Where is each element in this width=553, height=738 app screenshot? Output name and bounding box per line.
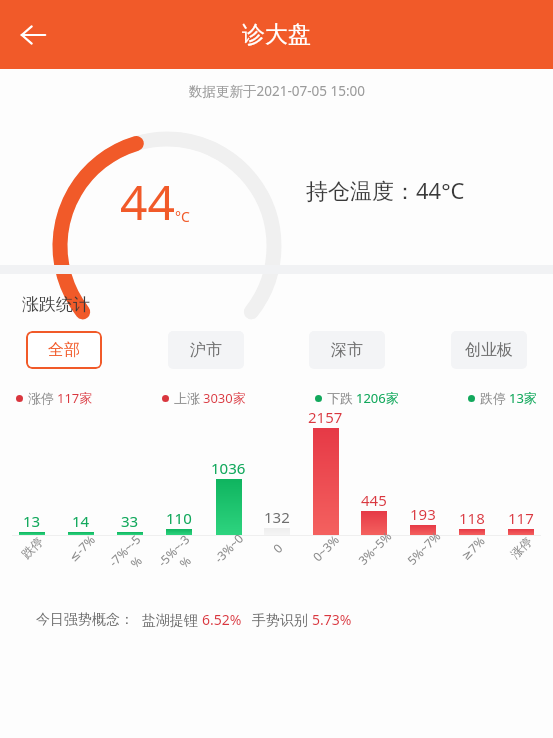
staticText: 193: [410, 504, 436, 524]
staticText: 118: [459, 508, 485, 528]
staticText: 涨停: [28, 390, 54, 406]
staticText: 持仓温度：44°C: [306, 175, 465, 205]
staticText: 全部: [48, 340, 80, 360]
staticText: 沪市: [190, 340, 222, 360]
staticText: 2157: [308, 407, 343, 427]
staticText: 13家: [509, 389, 537, 407]
staticText: 涨停: [507, 534, 535, 561]
staticText: 14: [72, 511, 90, 531]
staticText: 44: [120, 169, 175, 234]
staticText: -7%~-5%: [103, 529, 157, 583]
button[interactable]: 全部: [26, 331, 102, 369]
staticText: 33: [121, 511, 139, 531]
staticText: 132: [264, 507, 290, 527]
button[interactable]: 沪市: [168, 331, 244, 369]
staticText: 13: [23, 511, 41, 531]
staticText: 1036: [211, 458, 246, 478]
staticText: 跌停: [480, 390, 506, 406]
staticText: 1206家: [356, 389, 399, 407]
staticText: 跌停: [18, 534, 46, 561]
staticText: ≤-7%: [65, 531, 98, 565]
staticText: -3%~0: [210, 530, 247, 566]
staticText: ≥7%: [457, 533, 488, 563]
staticText: 数据更新于2021-07-05 15:00: [189, 82, 365, 100]
staticText: 下跌: [327, 390, 353, 406]
staticText: 涨跌统计: [22, 294, 90, 315]
staticText: 盐湖提锂: [142, 610, 202, 629]
staticText: 上涨: [174, 390, 200, 406]
staticText: 445: [361, 490, 387, 510]
staticText: 深市: [331, 340, 363, 360]
staticText: 3030家: [203, 389, 246, 407]
button[interactable]: Back: [8, 10, 58, 60]
button[interactable]: 深市: [309, 331, 385, 369]
staticText: 110: [166, 508, 192, 528]
staticText: 5%~7%: [403, 528, 444, 568]
staticText: 5.73%: [312, 610, 352, 629]
staticText: 手势识别: [252, 610, 312, 629]
staticText: °C: [175, 207, 190, 226]
staticText: 117家: [57, 389, 93, 407]
button[interactable]: 创业板: [451, 331, 527, 369]
staticText: 创业板: [465, 340, 513, 360]
staticText: 今日强势概念：: [36, 611, 134, 629]
staticText: -5%~-3%: [152, 529, 206, 583]
staticText: 3%~5%: [354, 528, 395, 568]
staticText: 诊大盘: [242, 20, 311, 49]
staticText: 0: [269, 540, 286, 556]
staticText: 117: [508, 508, 534, 528]
staticText: 6.52%: [202, 610, 242, 629]
staticText: 0~3%: [309, 531, 342, 565]
